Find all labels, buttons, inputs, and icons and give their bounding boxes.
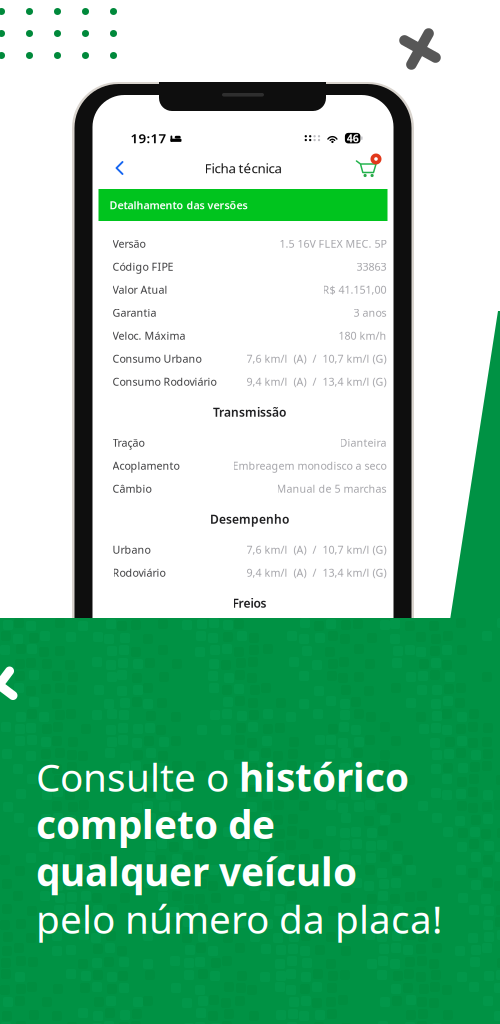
button[interactable]: Back xyxy=(104,153,134,183)
staticText: Consumo Urbano xyxy=(112,351,201,366)
staticText: 19:17 xyxy=(130,129,166,147)
staticText: Freios xyxy=(232,595,266,611)
staticText: 33863 xyxy=(356,259,386,274)
staticText: completo de xyxy=(36,798,275,850)
staticText: Detalhamento das versões xyxy=(109,198,247,212)
staticText: Tração xyxy=(112,435,144,450)
staticText: Veloc. Máxima xyxy=(112,328,185,343)
staticText: 9,4 km/l (A) / 13,4 km/l (G) xyxy=(246,565,386,580)
staticText: Consulte o xyxy=(36,751,239,802)
staticText: qualquer veículo xyxy=(36,846,357,897)
staticText: Embreagem monodisco a seco xyxy=(232,458,386,473)
staticText: 7,6 km/l (A) / 10,7 km/l (G) xyxy=(246,351,386,366)
staticText: Acoplamento xyxy=(112,458,179,473)
staticText: Desempenho xyxy=(210,511,289,527)
button[interactable]: Cart xyxy=(351,154,381,182)
staticText: 7,6 km/l (A) / 10,7 km/l (G) xyxy=(246,542,386,557)
staticText: 9,4 km/l (A) / 13,4 km/l (G) xyxy=(246,374,386,389)
staticText: Dianteira xyxy=(339,435,386,450)
staticText: Urbano xyxy=(112,542,150,557)
staticText: Versão xyxy=(112,236,145,251)
staticText: Valor Atual xyxy=(112,282,167,297)
staticText: 46 xyxy=(347,131,359,145)
staticText: Rodoviário xyxy=(112,565,165,580)
staticText: Ficha técnica xyxy=(204,159,281,177)
staticText: Câmbio xyxy=(112,481,151,496)
staticText: histórico xyxy=(239,751,409,802)
staticText: Transmissão xyxy=(213,404,286,420)
staticText: 3 anos xyxy=(353,305,386,320)
staticText: Código FIPE xyxy=(112,259,173,274)
staticText: pelo número da placa! xyxy=(36,893,442,944)
staticText: 1.5 16V FLEX MEC. 5P xyxy=(279,236,386,251)
staticText: R$ 41.151,00 xyxy=(322,282,386,297)
staticText: Manual de 5 marchas xyxy=(276,481,386,496)
staticText: Consumo Rodoviário xyxy=(112,374,216,389)
staticText: Garantia xyxy=(112,305,156,320)
staticText: 180 km/h xyxy=(338,328,386,343)
